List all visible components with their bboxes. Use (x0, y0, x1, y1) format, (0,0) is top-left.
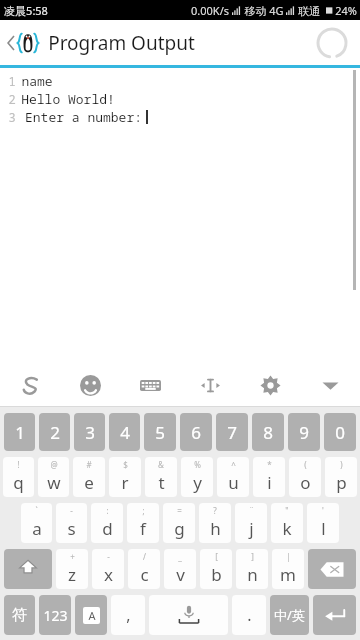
button[interactable]: $ (109, 457, 141, 497)
button[interactable]: Back (4, 23, 44, 63)
staticText: 0 (335, 421, 345, 444)
staticText: ; (142, 505, 145, 516)
button[interactable]: " (271, 503, 303, 543)
button[interactable]: = (163, 503, 195, 543)
staticText: i (267, 471, 272, 494)
staticText: w (47, 471, 61, 494)
staticText: e (84, 471, 94, 494)
button[interactable]: Enter (313, 595, 356, 635)
staticText: a (32, 517, 42, 540)
button[interactable]: ` (21, 503, 52, 543)
staticText: 6 (191, 421, 201, 444)
button[interactable]: * (253, 457, 285, 497)
staticText: ` (35, 505, 38, 516)
staticText: 符 (12, 606, 27, 625)
staticText: r (121, 471, 129, 494)
button[interactable]: Input language (75, 595, 107, 635)
staticText: ¨ (249, 505, 254, 516)
button[interactable]: + (56, 549, 88, 589)
button[interactable]: [ (200, 549, 232, 589)
button[interactable]: Settings (240, 364, 300, 406)
staticText: ] (251, 551, 254, 562)
button[interactable]: Keyboard (120, 364, 180, 406)
button[interactable]: - (92, 549, 124, 589)
button[interactable]: Move cursor (180, 364, 240, 406)
staticText: s (67, 517, 76, 540)
staticText: : (106, 505, 109, 516)
button[interactable]: . (232, 595, 266, 635)
staticText: d (102, 517, 113, 540)
staticText: x (104, 563, 113, 586)
staticText: # (86, 459, 92, 470)
button[interactable]: _ (164, 549, 196, 589)
button[interactable]: 符 (4, 595, 35, 635)
button[interactable]: 6 (180, 413, 212, 451)
button[interactable]: % (181, 457, 213, 497)
staticText: / (143, 551, 146, 562)
button[interactable]: 9 (288, 413, 320, 451)
staticText: - (107, 551, 110, 562)
staticText: 24% (335, 3, 357, 18)
button[interactable]: 0 (324, 413, 356, 451)
staticText: 1 (8, 73, 16, 89)
button[interactable]: 123 (39, 595, 71, 635)
staticText: A (88, 608, 96, 623)
button[interactable]: 中/英 (270, 595, 309, 635)
staticText: k (282, 517, 292, 540)
staticText: v (176, 563, 185, 586)
staticText: j (249, 517, 254, 540)
staticText: [ (215, 551, 218, 562)
button[interactable]: @ (38, 457, 69, 497)
staticText: o (300, 471, 311, 494)
staticText: 1 (15, 421, 25, 444)
button[interactable]: ] (236, 549, 268, 589)
button[interactable]: - (56, 503, 87, 543)
staticText: 5 (155, 421, 165, 444)
button[interactable]: ! (3, 457, 34, 497)
button[interactable]: # (73, 457, 105, 497)
staticText: c (140, 563, 149, 586)
staticText: 123 (43, 606, 68, 625)
staticText: . (247, 604, 252, 626)
button[interactable]: ? (199, 503, 231, 543)
button[interactable]: ' (307, 503, 339, 543)
staticText: n (247, 563, 258, 586)
button[interactable]: 1 (4, 413, 35, 451)
button[interactable]: Space (149, 595, 228, 635)
staticText: | (286, 551, 291, 562)
button[interactable]: ; (127, 503, 159, 543)
button[interactable]: Backspace (308, 549, 356, 589)
button[interactable]: : (91, 503, 123, 543)
button[interactable]: Hide keyboard (300, 364, 360, 406)
button[interactable]: 2 (39, 413, 70, 451)
button[interactable]: & (145, 457, 177, 497)
staticText: 中/英 (274, 606, 305, 624)
staticText: ! (17, 459, 20, 470)
staticText: * (267, 459, 272, 470)
button[interactable]: ¨ (235, 503, 267, 543)
staticText: % (194, 459, 201, 470)
staticText: b (211, 563, 222, 586)
button[interactable]: 7 (216, 413, 248, 451)
button[interactable]: ( (289, 457, 321, 497)
staticText: z (68, 563, 76, 586)
button[interactable]: 8 (252, 413, 284, 451)
staticText: u (228, 471, 239, 494)
button[interactable]: 3 (74, 413, 105, 451)
button[interactable]: ^ (217, 457, 249, 497)
staticText: 凌晨5:58 (4, 3, 48, 18)
button[interactable]: / (128, 549, 160, 589)
staticText: 8 (263, 421, 273, 444)
button[interactable]: 5 (144, 413, 176, 451)
staticText: q (13, 471, 24, 494)
button[interactable]: 4 (109, 413, 140, 451)
button[interactable]: Sogou input (0, 364, 60, 406)
button[interactable]: | (272, 549, 304, 589)
button[interactable]: Shift (4, 549, 52, 589)
button[interactable]: , (111, 595, 145, 635)
staticText: ) (340, 459, 343, 470)
button[interactable]: ) (325, 457, 357, 497)
button[interactable]: Loading (316, 27, 348, 59)
button[interactable]: Emoji (60, 364, 120, 406)
staticText: 2 (50, 421, 60, 444)
